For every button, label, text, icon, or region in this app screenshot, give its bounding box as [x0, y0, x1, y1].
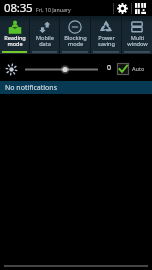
staticText: Mobile data	[36, 34, 54, 48]
button[interactable]: Close panel	[0, 258, 152, 270]
staticText: Blocking mode	[64, 34, 87, 48]
staticText: No notifications	[5, 83, 58, 93]
button[interactable]: Mobile data	[30, 16, 59, 54]
staticText: Auto	[132, 65, 145, 72]
button[interactable]: Brightness slider	[22, 63, 101, 76]
button[interactable]: Reading mode	[0, 16, 29, 54]
staticText: 0	[107, 63, 112, 73]
button[interactable]: Brightness	[4, 62, 18, 76]
button[interactable]: Auto	[117, 62, 145, 75]
button[interactable]: Edit quick settings	[132, 0, 149, 16]
button[interactable]: Blocking mode	[60, 16, 90, 54]
staticText: Multi window	[127, 34, 148, 48]
button[interactable]: Settings	[114, 0, 131, 16]
staticText: Fri, 10 January	[36, 6, 71, 13]
button[interactable]: Multi window	[122, 16, 152, 54]
staticText: Power saving	[98, 34, 115, 48]
button[interactable]: Power saving	[91, 16, 121, 54]
staticText: Reading mode	[4, 34, 26, 48]
staticText: 08:35	[4, 0, 33, 16]
